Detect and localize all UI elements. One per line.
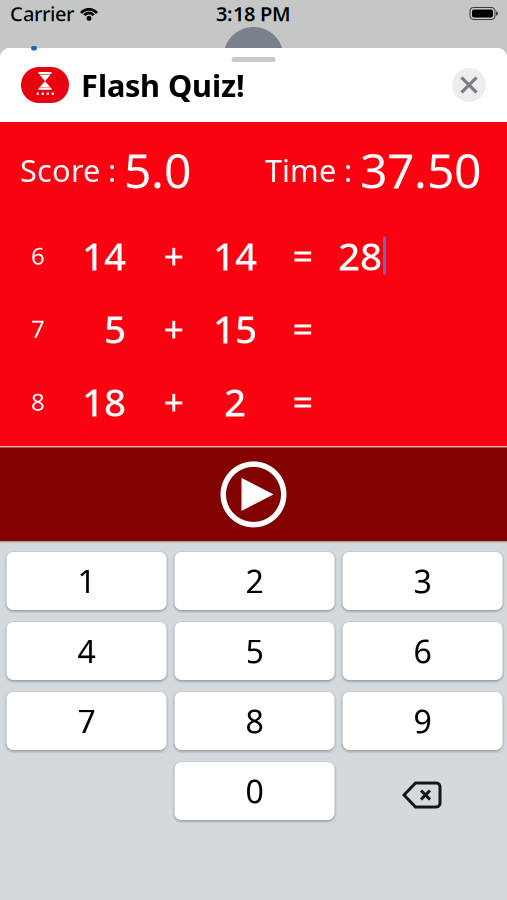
button[interactable]: Close — [452, 68, 486, 102]
staticText: 5 — [245, 630, 263, 672]
button[interactable]: 6 — [342, 622, 502, 680]
staticText: 37.50 — [360, 138, 481, 202]
staticText: 6 — [31, 240, 45, 271]
staticText: Carrier — [10, 0, 74, 27]
staticText: 2 — [245, 560, 263, 602]
button[interactable]: 9 — [342, 692, 502, 750]
staticText: 6 — [413, 630, 431, 672]
button[interactable]: Delete — [342, 762, 502, 820]
button[interactable]: 8 — [174, 692, 334, 750]
button[interactable]: 3 — [342, 552, 502, 610]
staticText: Flash Quiz! — [81, 65, 245, 105]
staticText: 1 — [77, 560, 95, 602]
staticText: 8 — [31, 386, 45, 417]
button[interactable]: 5 — [174, 622, 334, 680]
staticText: Time : — [265, 150, 360, 190]
staticText: = — [292, 378, 313, 425]
staticText: 14 — [213, 230, 257, 281]
staticText: = — [292, 305, 313, 352]
button[interactable]: 0 — [174, 762, 334, 820]
staticText: 3:18 PM — [216, 0, 291, 27]
staticText: 5.0 — [124, 138, 191, 202]
staticText: + — [163, 378, 184, 425]
staticText: = — [292, 232, 313, 279]
staticText: 18 — [82, 376, 126, 427]
staticText: 4 — [77, 630, 95, 672]
staticText: + — [163, 232, 184, 279]
staticText: 5 — [104, 303, 126, 354]
staticText: 7 — [31, 313, 45, 344]
staticText: 14 — [82, 230, 126, 281]
button[interactable]: 2 — [174, 552, 334, 610]
button[interactable]: 4 — [6, 622, 166, 680]
staticText: 2 — [224, 376, 246, 427]
staticText: 7 — [77, 700, 95, 742]
staticText: 0 — [245, 770, 263, 812]
button[interactable]: Play — [220, 461, 286, 527]
staticText: 15 — [213, 303, 257, 354]
staticText: 9 — [413, 700, 431, 742]
staticText: 8 — [245, 700, 263, 742]
staticText: Score : — [20, 150, 124, 190]
staticText: + — [163, 305, 184, 352]
staticText: 28 — [338, 230, 382, 281]
button[interactable]: 7 — [6, 692, 166, 750]
staticText: 3 — [413, 560, 431, 602]
button[interactable]: 1 — [6, 552, 166, 610]
